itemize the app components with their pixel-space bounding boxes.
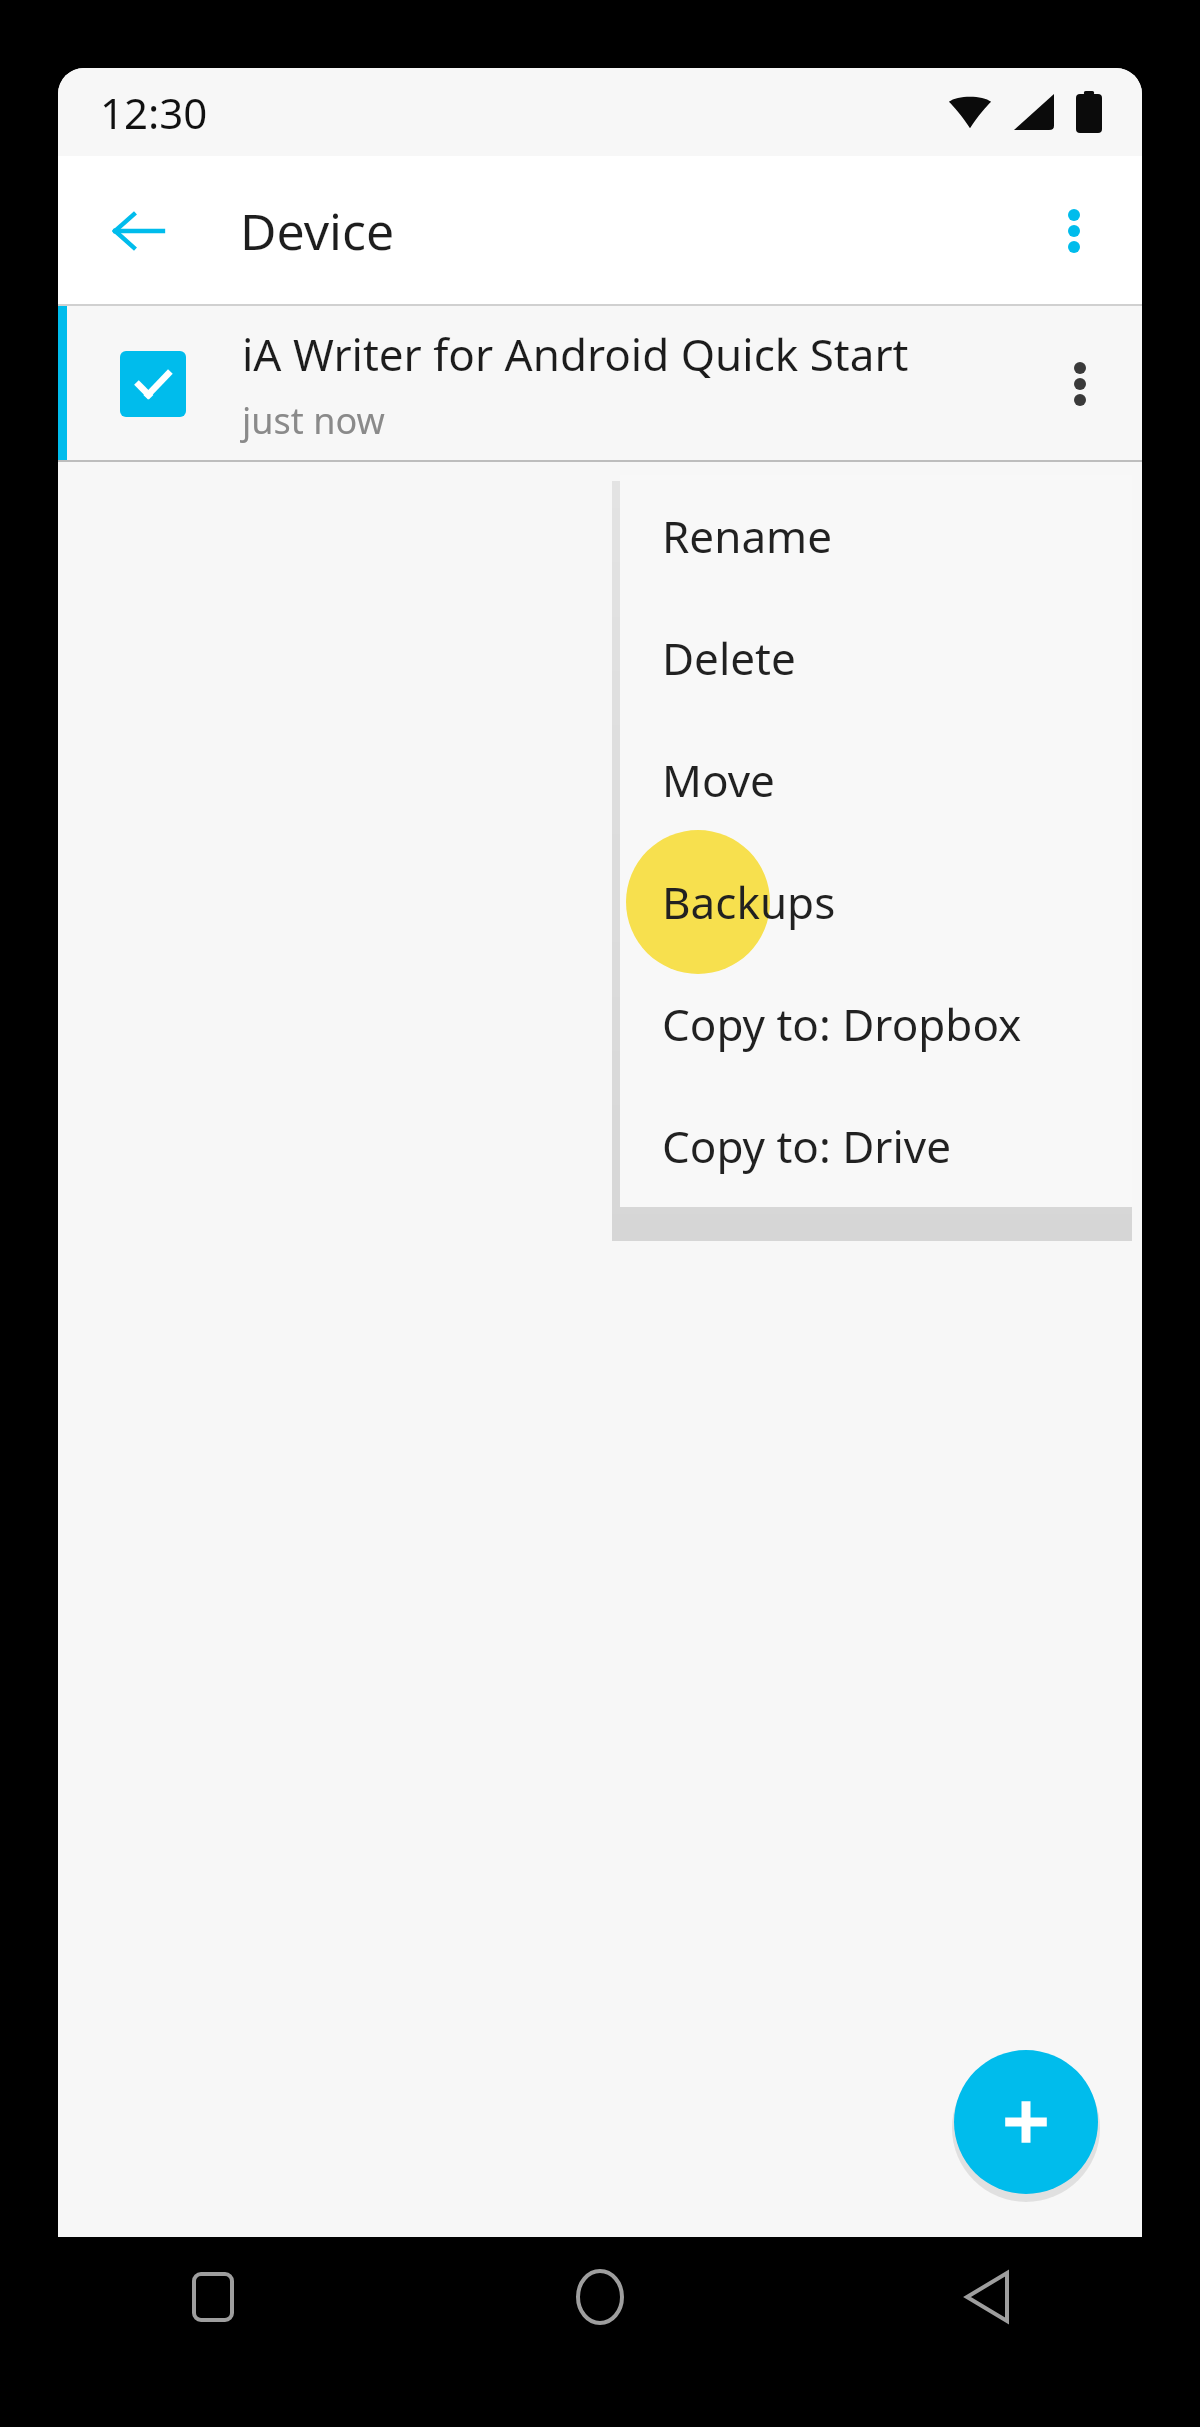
staticText: iA Writer for Android Quick Start [242, 324, 909, 384]
button[interactable]: Rename [620, 475, 1132, 597]
staticText: Copy to: Drive [662, 1116, 952, 1176]
button[interactable]: Back [942, 2252, 1032, 2342]
button[interactable]: New document [954, 2050, 1098, 2194]
button[interactable]: Selected [120, 351, 186, 417]
button[interactable]: Copy to: Drive [620, 1085, 1132, 1207]
staticText: Device [240, 197, 395, 265]
staticText: Copy to: Dropbox [662, 994, 1022, 1054]
staticText: Move [662, 750, 775, 810]
staticText: 12:30 [100, 84, 208, 141]
button[interactable]: Backups [620, 841, 1132, 963]
button[interactable]: Copy to: Dropbox [620, 963, 1132, 1085]
staticText: Backups [662, 872, 836, 932]
button[interactable]: More options [1036, 193, 1112, 269]
button[interactable]: Item options [1040, 344, 1120, 424]
button[interactable]: Move [620, 719, 1132, 841]
button[interactable]: Selected [58, 306, 1142, 462]
button[interactable]: Back [100, 193, 176, 269]
button[interactable]: Recent apps [168, 2252, 258, 2342]
staticText: just now [242, 396, 385, 445]
button[interactable]: Delete [620, 597, 1132, 719]
staticText: Delete [662, 628, 796, 688]
staticText: Rename [662, 506, 833, 566]
button[interactable]: Home [555, 2252, 645, 2342]
